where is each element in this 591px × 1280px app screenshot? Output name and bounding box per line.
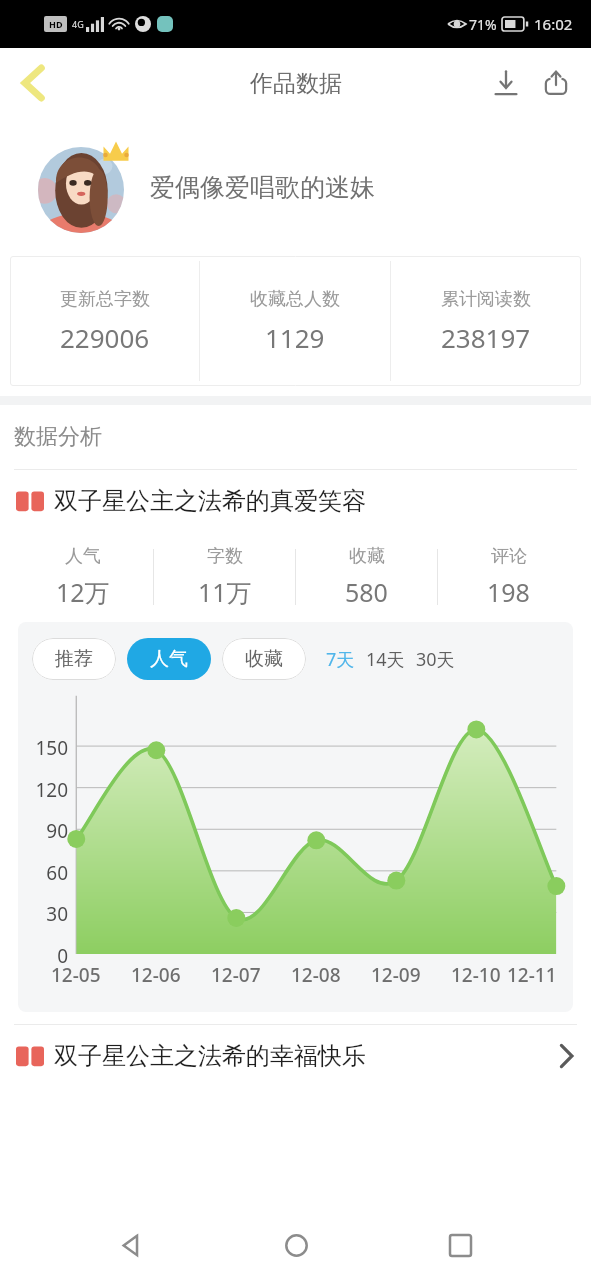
staticText: 90	[46, 818, 68, 844]
staticText: 双子星公主之法希的幸福快乐	[54, 1041, 366, 1071]
button[interactable]: 双子星公主之法希的真爱笑容	[0, 470, 591, 532]
staticText: 12-07	[211, 962, 261, 988]
staticText: 累计阅读数	[441, 288, 531, 311]
staticText: 0	[57, 943, 68, 969]
staticText: 数据分析	[14, 423, 102, 451]
staticText: 150	[35, 735, 68, 761]
staticText: 12-06	[131, 962, 181, 988]
staticText: 人气	[65, 545, 101, 568]
staticText: 字数	[207, 545, 243, 568]
button[interactable]: 30天	[416, 647, 455, 672]
button[interactable]: 更新总字数	[10, 256, 199, 386]
staticText: 12-05	[51, 962, 101, 988]
staticText: 60	[46, 860, 68, 886]
button[interactable]: 14天	[366, 647, 405, 672]
staticText: 12万	[56, 575, 110, 609]
staticText: 评论	[491, 545, 527, 568]
button[interactable]: Recents	[427, 1212, 493, 1278]
staticText: 580	[345, 575, 388, 609]
staticText: 12-11	[507, 962, 557, 988]
staticText: 人气	[150, 647, 188, 671]
staticText: 238197	[441, 320, 531, 355]
button[interactable]: 人气	[127, 638, 211, 680]
staticText: 1129	[265, 320, 325, 355]
button[interactable]: Share	[531, 58, 581, 108]
button[interactable]: Home	[263, 1212, 329, 1278]
staticText: 12-10	[451, 962, 501, 988]
staticText: 16:02	[534, 14, 573, 34]
button[interactable]: 收藏	[222, 638, 306, 680]
staticText: 双子星公主之法希的真爱笑容	[54, 486, 366, 516]
button[interactable]: 字数	[154, 532, 295, 622]
button[interactable]: 双子星公主之法希的幸福快乐	[0, 1025, 591, 1087]
button[interactable]: 收藏总人数	[200, 256, 390, 386]
staticText: 71%	[469, 15, 497, 34]
staticText: 爱偶像爱唱歌的迷妹	[150, 172, 375, 203]
staticText: 更新总字数	[60, 288, 150, 311]
button[interactable]: 7天	[326, 647, 355, 672]
staticText: 收藏总人数	[250, 288, 340, 311]
button[interactable]: 人气	[12, 532, 153, 622]
staticText: HD	[49, 18, 63, 30]
staticText: 198	[487, 575, 530, 609]
staticText: 229006	[60, 320, 150, 355]
staticText: 12-08	[291, 962, 341, 988]
staticText: 推荐	[55, 647, 93, 671]
button[interactable]: 推荐	[32, 638, 116, 680]
staticText: 收藏	[349, 545, 385, 568]
staticText: 30	[46, 901, 68, 927]
staticText: 4G	[72, 18, 84, 30]
button[interactable]: Download	[481, 58, 531, 108]
button[interactable]: Back	[6, 56, 60, 110]
staticText: 11万	[198, 575, 252, 609]
button[interactable]: 累计阅读数	[391, 256, 581, 386]
staticText: 120	[35, 777, 68, 803]
button[interactable]: 收藏	[296, 532, 437, 622]
staticText: 作品数据	[250, 69, 342, 98]
button[interactable]: 评论	[438, 532, 579, 622]
button[interactable]: Back	[98, 1212, 164, 1278]
staticText: 收藏	[245, 647, 283, 671]
staticText: 12-09	[371, 962, 421, 988]
button[interactable]: 爱偶像爱唱歌的迷妹	[0, 118, 591, 256]
